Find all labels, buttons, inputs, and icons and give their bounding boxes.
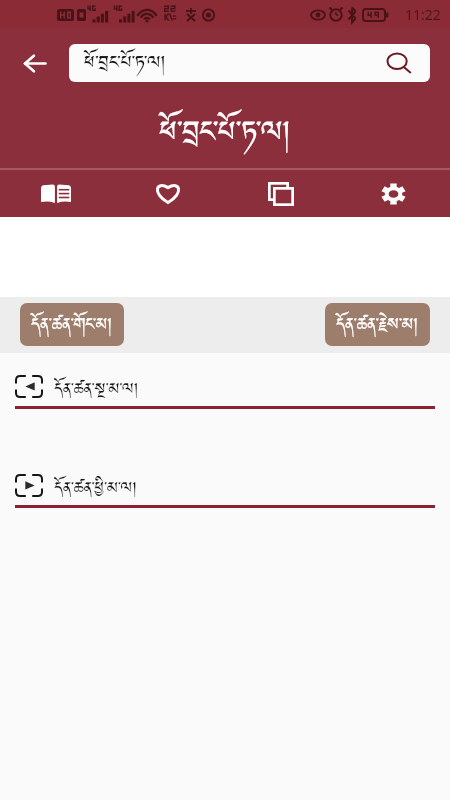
staticText: དོན་ཚན་སྔ་མ་ལ། [54, 374, 139, 398]
button[interactable]: Copy [224, 170, 337, 217]
button[interactable]: དོན་ཚན་སྔ་མ་ལ། [0, 353, 450, 452]
staticText: དོན་ཚན་རྗེས་མ། [336, 308, 419, 342]
button[interactable]: དོན་ཚན་རྗེས་མ། [325, 303, 430, 346]
button[interactable]: Favourites [112, 170, 224, 217]
button[interactable]: Settings [337, 170, 450, 217]
staticText: དོན་ཚན་གོང་མ། [31, 308, 113, 342]
button[interactable]: Dictionary [0, 170, 112, 217]
button[interactable]: དོན་ཚན་ཕྱི་མ་ལ། [0, 452, 450, 551]
staticText: དོན་ཚན་ཕྱི་མ་ལ། [54, 473, 137, 497]
button[interactable]: དོན་ཚན་གོང་མ། [20, 303, 124, 346]
staticText: ཕོ་བྲང་པོ་ཏ་ལ། [159, 104, 291, 163]
button[interactable]: Back [0, 28, 69, 97]
staticText: ཕོ་བྲང་པོ་ཏ་ལ། [84, 45, 166, 82]
button[interactable]: ཕོ་བྲང་པོ་ཏ་ལ། [69, 44, 430, 82]
staticText: 11:22 [405, 5, 441, 24]
